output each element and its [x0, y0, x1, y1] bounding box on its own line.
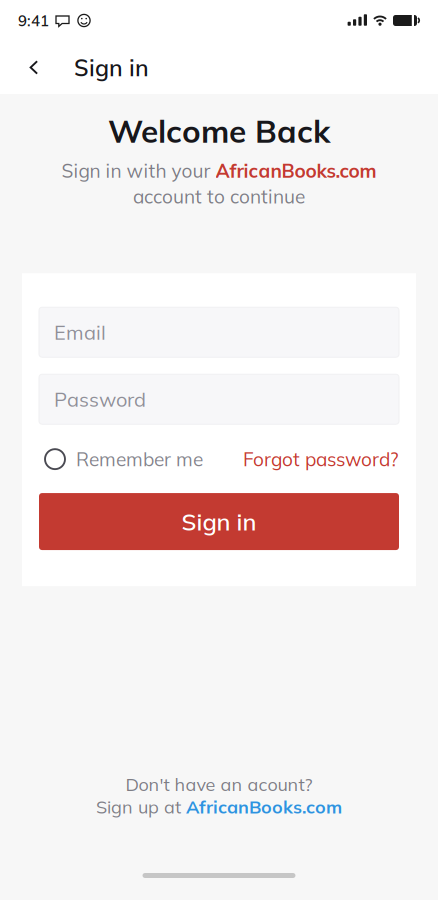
- staticText: Don't have an acount?: [125, 773, 312, 795]
- staticText: Remember me: [76, 447, 203, 471]
- staticText: account to continue: [133, 184, 305, 208]
- staticText: Sign in: [181, 507, 256, 536]
- button[interactable]: Back: [14, 45, 54, 89]
- staticText: Sign in: [74, 53, 149, 82]
- button[interactable]: Password: [39, 374, 399, 424]
- button[interactable]: Remember me: [44, 447, 203, 471]
- button[interactable]: Email: [39, 307, 399, 357]
- staticText: Welcome Back: [108, 111, 330, 150]
- staticText: Password: [54, 387, 146, 412]
- staticText: Sign up at: [96, 795, 181, 818]
- staticText: Email: [54, 320, 106, 345]
- button[interactable]: Forgot password?: [243, 447, 399, 471]
- button[interactable]: Sign in: [39, 493, 399, 550]
- staticText: Forgot password?: [243, 447, 399, 471]
- button[interactable]: AfricanBooks.com: [186, 795, 342, 818]
- staticText: 9:41: [18, 11, 49, 30]
- staticText: Sign in with your: [61, 158, 210, 182]
- staticText: AfricanBooks.com: [215, 158, 376, 182]
- staticText: AfricanBooks.com: [186, 795, 342, 818]
